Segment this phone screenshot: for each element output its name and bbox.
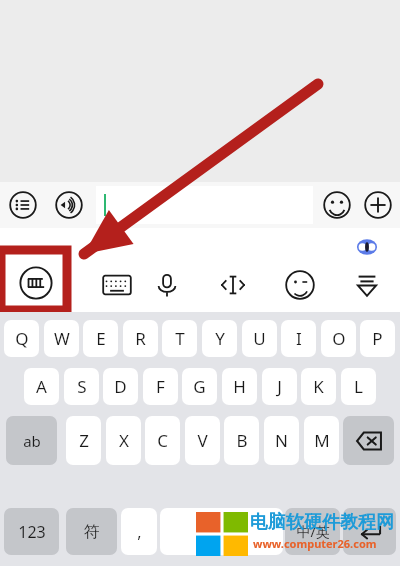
button[interactable]: Menu list (9, 191, 37, 219)
button[interactable]: Move cursor (214, 266, 252, 304)
staticText: V (197, 429, 208, 452)
staticText: R (135, 327, 146, 350)
button[interactable]: W (44, 320, 79, 357)
staticText: D (114, 375, 127, 398)
staticText: L (354, 375, 363, 398)
staticText: F (156, 375, 165, 398)
staticText: E (96, 327, 106, 350)
staticText: K (313, 375, 324, 398)
button[interactable]: M (304, 416, 339, 465)
staticText: J (277, 375, 282, 398)
staticText: W (54, 327, 70, 350)
staticText: A (36, 375, 47, 398)
button[interactable]: Microphone (148, 266, 186, 304)
button[interactable]: A (24, 368, 59, 405)
staticText: P (372, 327, 383, 350)
button[interactable] (96, 186, 313, 224)
button[interactable]: E (83, 320, 118, 357)
button[interactable]: N (264, 416, 299, 465)
staticText: www.computer26.com (253, 536, 377, 551)
button[interactable]: L (341, 368, 376, 405)
staticText: H (233, 375, 246, 398)
button[interactable]: Keyboard (98, 266, 136, 304)
staticText: S (77, 375, 87, 398)
staticText: Y (215, 327, 225, 350)
button[interactable]: J (262, 368, 297, 405)
staticText: 中/英 (296, 522, 330, 541)
staticText: 电脑软硬件教程网 (250, 511, 394, 534)
button[interactable]: Backspace (343, 416, 394, 465)
button[interactable]: ab (6, 416, 57, 465)
button[interactable]: I (281, 320, 316, 357)
button[interactable]: U (242, 320, 277, 357)
button[interactable]: Enter (343, 508, 396, 555)
staticText: U (253, 327, 266, 350)
button[interactable]: 中/英 (285, 508, 340, 555)
staticText: N (275, 429, 288, 452)
staticText: M (314, 429, 330, 452)
staticText: O (332, 327, 346, 350)
staticText: Q (15, 327, 29, 350)
staticText: G (193, 375, 206, 398)
staticText: 符 (84, 522, 100, 542)
button[interactable]: F (143, 368, 178, 405)
staticText: X (119, 429, 129, 452)
button[interactable]: H (222, 368, 257, 405)
button[interactable]: 123 (4, 508, 59, 555)
button[interactable]: Emoji (323, 191, 351, 219)
button[interactable]: 符 (66, 508, 117, 555)
staticText: , (137, 521, 142, 543)
button[interactable]: R (123, 320, 158, 357)
button[interactable]: O (321, 320, 356, 357)
button[interactable]: K (301, 368, 336, 405)
button[interactable]: P (360, 320, 395, 357)
button[interactable] (160, 508, 283, 555)
button[interactable]: V (185, 416, 220, 465)
button[interactable]: Hide keyboard (348, 266, 386, 304)
button[interactable]: Stickers (281, 266, 319, 304)
button[interactable]: D (103, 368, 138, 405)
button[interactable]: T (162, 320, 197, 357)
button[interactable]: , (121, 508, 157, 555)
staticText: ab (23, 431, 41, 451)
button[interactable]: Q (4, 320, 39, 357)
button[interactable]: Add (364, 191, 392, 219)
button[interactable]: Voice (55, 191, 83, 219)
staticText: T (175, 327, 185, 350)
button[interactable]: Input method (9, 256, 63, 310)
staticText: 123 (18, 521, 46, 543)
button[interactable]: C (145, 416, 180, 465)
staticText: B (236, 429, 248, 452)
staticText: C (157, 429, 168, 452)
button[interactable]: X (106, 416, 141, 465)
button[interactable]: Z (66, 416, 101, 465)
button[interactable]: G (182, 368, 217, 405)
button[interactable]: S (64, 368, 99, 405)
button[interactable]: Y (202, 320, 237, 357)
staticText: I (296, 327, 302, 350)
staticText: Z (79, 429, 89, 452)
button[interactable]: B (224, 416, 259, 465)
